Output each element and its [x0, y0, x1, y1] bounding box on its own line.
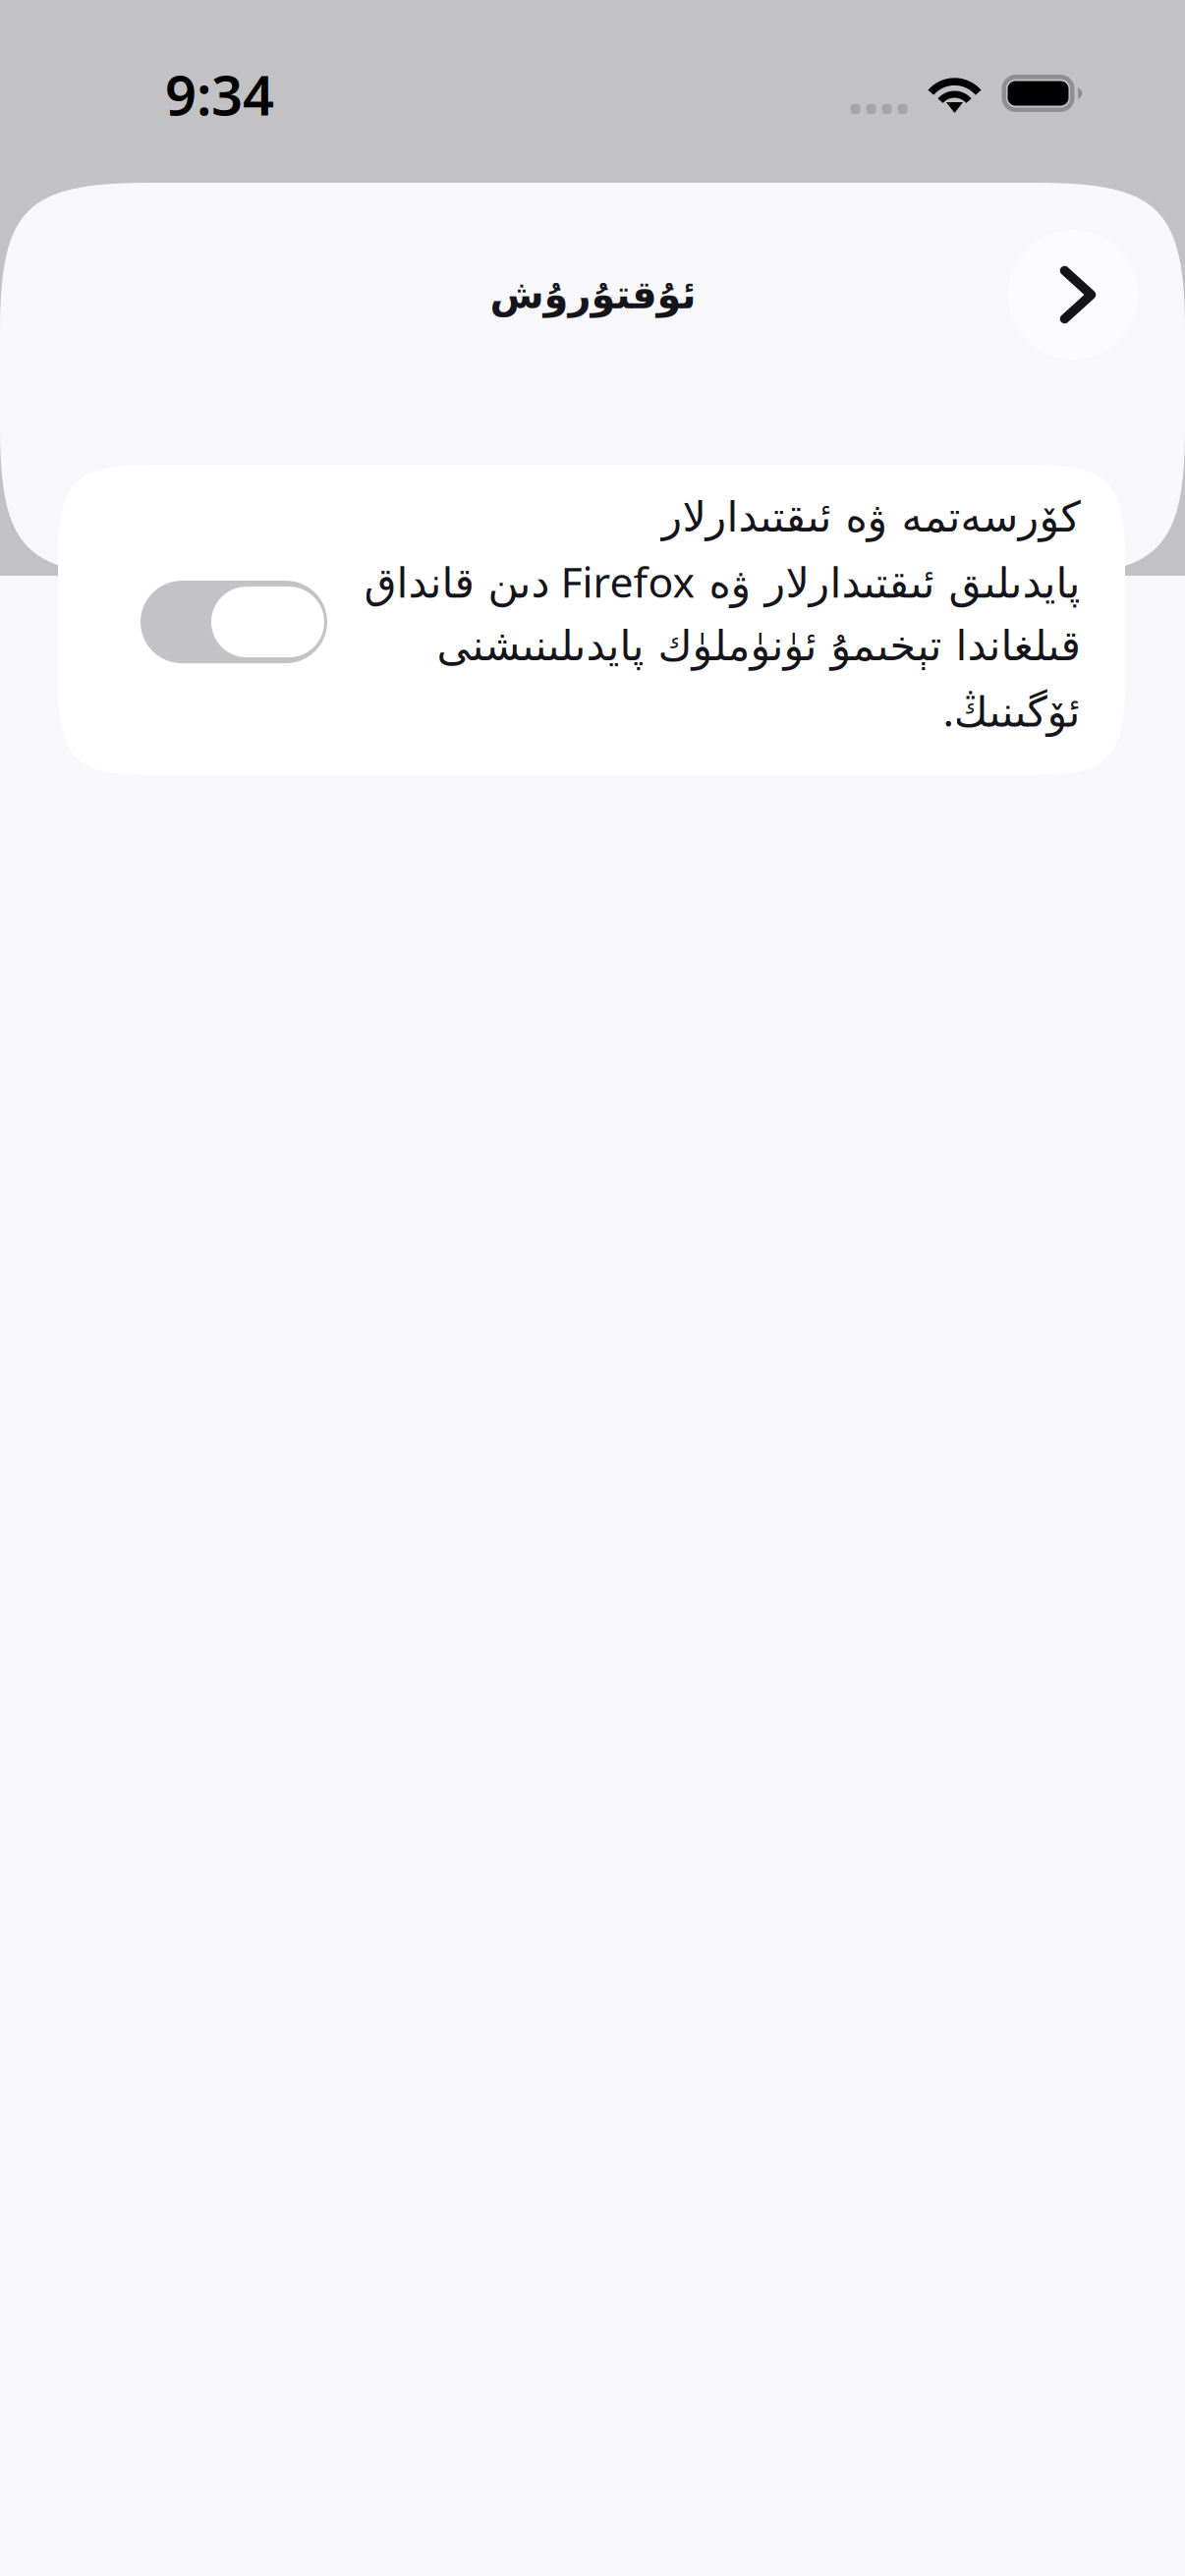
button[interactable]: Tips and features, off — [141, 581, 327, 663]
staticText: ئۇقتۇرۇش — [489, 272, 696, 317]
staticText: پايدىلىق ئىقتىدارلار ۋە Firefox دىن قاند… — [364, 554, 1080, 738]
staticText: 9:34 — [165, 58, 274, 131]
staticText: كۆرسەتمە ۋە ئىقتىدارلار — [661, 493, 1080, 541]
button[interactable]: Next — [1008, 230, 1138, 360]
